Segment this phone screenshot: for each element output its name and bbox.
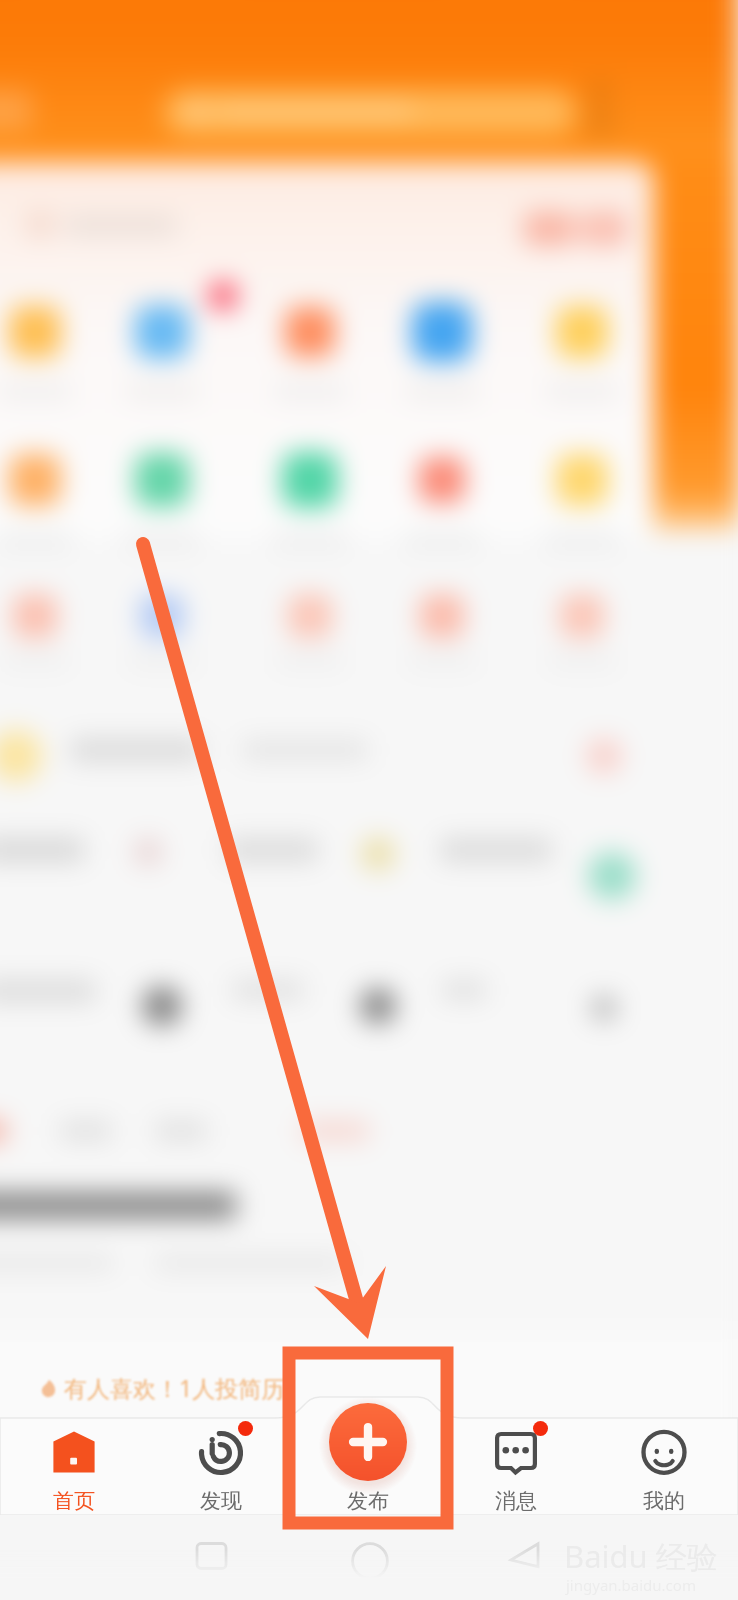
other: Profile: [643, 1432, 685, 1474]
staticText: jingyan.baidu.com: [566, 1575, 696, 1595]
staticText: 发现: [200, 1488, 242, 1514]
other: Publish: [320, 1394, 416, 1490]
button[interactable]: Home: [0, 1418, 147, 1515]
other: Discover: [200, 1432, 242, 1474]
other: Home: [53, 1432, 95, 1474]
staticText: 我的: [643, 1488, 685, 1514]
staticText: 有人喜欢！1人投简历: [64, 1372, 285, 1403]
staticText: 消息: [495, 1488, 537, 1514]
button[interactable]: Messages: [442, 1418, 590, 1515]
other: Messages: [495, 1432, 537, 1474]
staticText: 首页: [53, 1488, 95, 1514]
staticText: Baidu 经验: [564, 1535, 718, 1577]
staticText: 发布: [347, 1488, 389, 1514]
button[interactable]: Profile: [590, 1418, 738, 1515]
button[interactable]: Discover: [147, 1418, 294, 1515]
button[interactable]: Publish: [294, 1418, 442, 1515]
